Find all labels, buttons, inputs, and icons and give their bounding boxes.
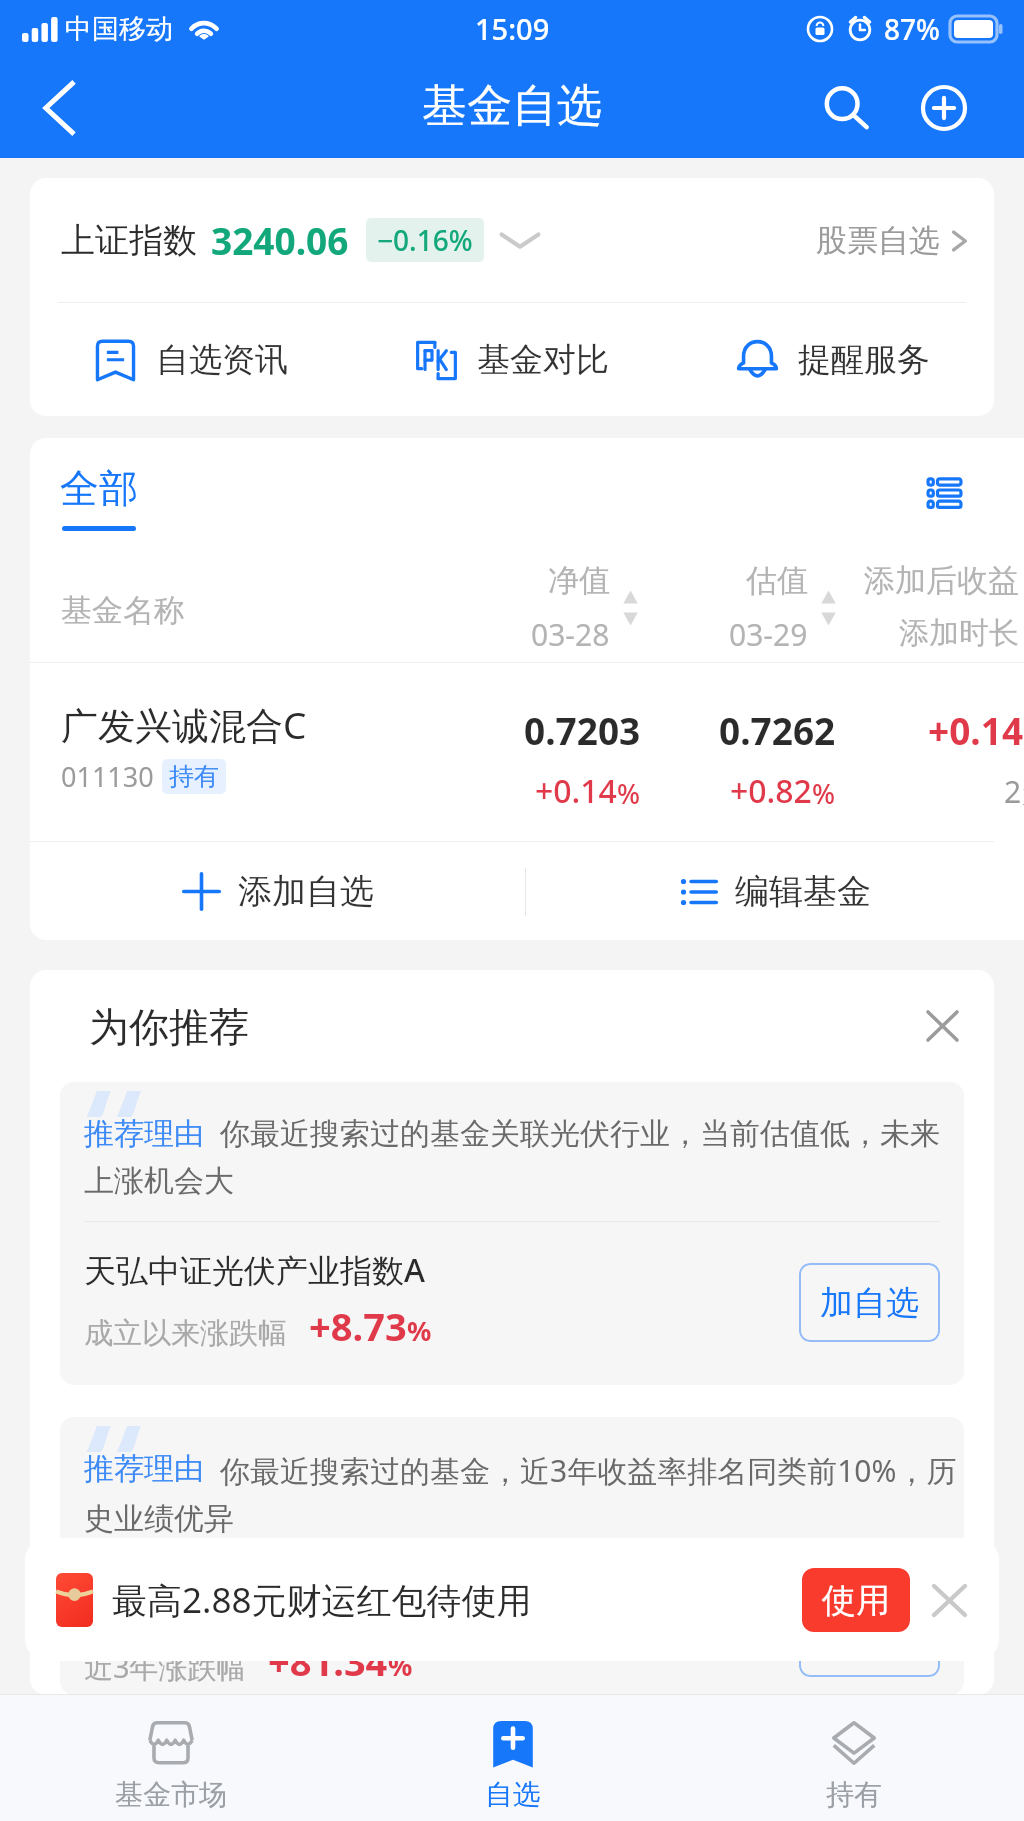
staticText: 添加时长 [899,614,1019,652]
staticText: 使用 [822,1579,890,1622]
button[interactable]: 自选资讯 [30,303,352,416]
staticText: 史业绩优异 [84,1500,234,1538]
staticText: 2天 [1004,771,1024,812]
staticText: 推荐理由 [84,1450,204,1488]
button[interactable]: Back [0,58,118,158]
staticText: 全部 [60,464,138,513]
staticText: 持有 [826,1777,882,1812]
staticText: +0.14 [928,705,1024,755]
staticText: 15:09 [475,9,550,48]
staticText: 0.7262 [719,705,836,755]
staticText: 提醒服务 [798,339,930,381]
staticText: 成立以来涨跌幅 [84,1315,287,1352]
staticText: +0.14 [535,769,617,813]
button[interactable]: Switch list layout [910,458,978,526]
button[interactable]: 最高2.88元财运红包待使用 [25,1538,999,1661]
staticText: 03-29 [729,614,808,655]
staticText: 净值 [548,561,610,600]
button[interactable]: 股票自选 [816,221,968,260]
button[interactable]: Search [800,58,892,158]
staticText: % [407,1312,432,1349]
staticText: 你最近搜索过的基金关联光伏行业，当前估值低，未来 [220,1115,940,1153]
staticText: 基金名称 [61,591,185,630]
button[interactable]: Add fund [898,58,990,158]
staticText: 0.7203 [524,705,641,755]
staticText: 上证指数 [61,219,197,262]
staticText: 华夏中证500指数增强A [84,1583,416,1627]
button[interactable]: 全部 [54,456,144,539]
staticText: 你最近搜索过的基金，近3年收益率排名同类前10%，历 [220,1450,957,1491]
button[interactable]: 编辑基金 [527,842,1024,940]
button[interactable]: 提醒服务 [673,303,994,416]
staticText: 加自选 [820,1617,919,1659]
button[interactable]: 自选 [342,1695,683,1821]
staticText: 上涨机会大 [84,1162,234,1200]
staticText: +81.34 [268,1635,388,1687]
staticText: % [388,1647,413,1684]
staticText: 87% [884,10,940,48]
button[interactable]: 基金市场 [0,1695,342,1821]
staticText: 基金市场 [115,1777,227,1812]
staticText: −0.16% [377,221,473,259]
staticText: 广发兴诚混合C [61,699,307,750]
staticText: 011130 [61,758,154,795]
staticText: 3240.06 [211,215,349,265]
button[interactable]: 持有 [683,1695,1024,1821]
staticText: 股票自选 [816,221,940,260]
staticText: % [812,775,836,812]
staticText: 推荐理由 [84,1115,204,1153]
button[interactable]: 上证指数 [30,178,994,302]
staticText: 添加后收益 [864,561,1019,600]
staticText: +0.82 [730,769,812,813]
button[interactable]: 加自选 [799,1263,940,1342]
staticText: 持有 [169,761,219,792]
button[interactable]: 基金对比 [352,303,673,416]
button[interactable]: 广发兴诚混合C [30,663,1024,841]
staticText: 中国移动 [65,12,173,46]
staticText: 自选资讯 [156,339,288,381]
button[interactable]: Dismiss banner [920,1571,978,1629]
staticText: 基金对比 [477,339,609,381]
staticText: 基金自选 [422,78,602,135]
staticText: 03-28 [531,614,610,655]
button[interactable]: 加自选 [799,1598,940,1677]
button[interactable]: 使用 [802,1568,910,1632]
staticText: 加自选 [820,1282,919,1324]
staticText: 天弘中证光伏产业指数A [84,1248,425,1292]
staticText: 最高2.88元财运红包待使用 [112,1576,532,1624]
staticText: 编辑基金 [735,870,871,913]
staticText: 添加自选 [238,870,374,913]
button[interactable]: Close recommendations [910,994,974,1058]
staticText: +8.73 [309,1300,407,1352]
staticText: 估值 [746,561,808,600]
staticText: 近3年涨跌幅 [84,1647,246,1687]
button[interactable]: 添加自选 [30,842,527,940]
staticText: 自选 [485,1777,541,1812]
staticText: 为你推荐 [89,1002,249,1052]
staticText: % [617,775,641,812]
